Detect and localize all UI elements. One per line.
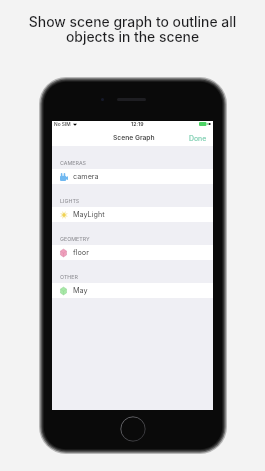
staticText: floor [73, 248, 89, 257]
staticText: May [73, 286, 88, 295]
staticText: GEOMETRY [60, 236, 90, 242]
staticText: Done [189, 134, 207, 142]
button[interactable]: Done [183, 131, 213, 145]
staticText: CAMERAS [60, 160, 86, 166]
staticText: 12:19 [131, 121, 144, 127]
staticText: No SIM [54, 121, 71, 127]
button[interactable]: MayLight [52, 207, 213, 222]
button[interactable]: Home [120, 416, 146, 442]
staticText: Scene Graph [113, 134, 155, 142]
staticText: camera [73, 172, 99, 181]
staticText: Show scene graph to outline all objects … [0, 14, 265, 45]
staticText: LIGHTS [60, 198, 80, 204]
staticText: MayLight [73, 210, 105, 219]
button[interactable]: May [52, 283, 213, 298]
staticText: OTHER [60, 274, 78, 280]
button[interactable]: floor [52, 245, 213, 260]
button[interactable]: camera [52, 169, 213, 184]
